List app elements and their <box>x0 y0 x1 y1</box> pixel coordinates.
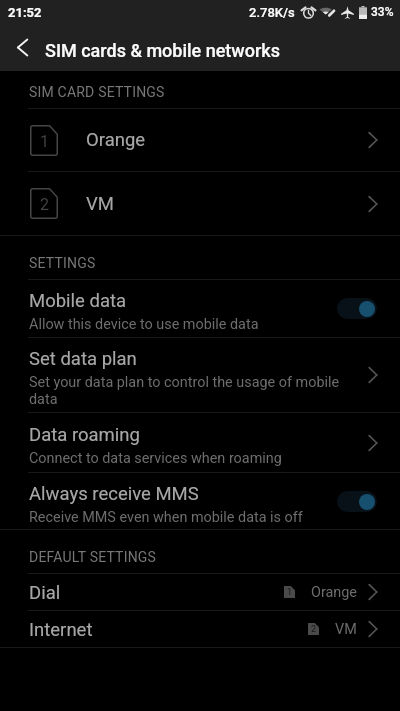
staticText: 21:52 <box>8 5 42 20</box>
button[interactable]: Mobile data <box>0 280 400 337</box>
staticText: Orange <box>86 129 146 151</box>
staticText: Internet <box>29 619 93 641</box>
staticText: SIM CARD SETTINGS <box>29 84 165 100</box>
button[interactable]: Data roaming <box>0 413 400 472</box>
staticText: SETTINGS <box>29 255 96 271</box>
staticText: 2 <box>311 624 317 635</box>
staticText: Set data plan <box>29 348 137 370</box>
staticText: 2 <box>40 195 49 214</box>
staticText: Set your data plan to control the usage … <box>29 374 340 391</box>
staticText: data <box>29 391 58 408</box>
staticText: Always receive MMS <box>29 483 199 505</box>
button[interactable]: 1 <box>0 109 400 171</box>
button[interactable]: Set data plan <box>0 338 400 412</box>
button[interactable]: Internet <box>0 611 400 647</box>
button[interactable]: Dial <box>0 574 400 610</box>
staticText: Receive MMS even when mobile data is off <box>29 509 303 526</box>
staticText: Dial <box>29 582 61 604</box>
staticText: VM <box>86 193 114 215</box>
staticText: Data roaming <box>29 424 140 446</box>
staticText: Allow this device to use mobile data <box>29 316 259 333</box>
staticText: 33% <box>371 5 394 19</box>
button[interactable]: Always receive MMS <box>0 473 400 529</box>
staticText: DEFAULT SETTINGS <box>29 549 157 565</box>
staticText: Orange <box>311 584 357 601</box>
staticText: 1 <box>40 132 49 151</box>
staticText: VM <box>335 621 357 638</box>
staticText: Connect to data services when roaming <box>29 450 282 467</box>
button[interactable]: Back <box>0 24 45 71</box>
staticText: 1 <box>287 587 293 598</box>
staticText: Mobile data <box>29 290 127 312</box>
staticText: SIM cards & mobile networks <box>45 40 280 61</box>
staticText: 2.78K/s <box>249 5 295 20</box>
button[interactable]: 2 <box>0 172 400 235</box>
